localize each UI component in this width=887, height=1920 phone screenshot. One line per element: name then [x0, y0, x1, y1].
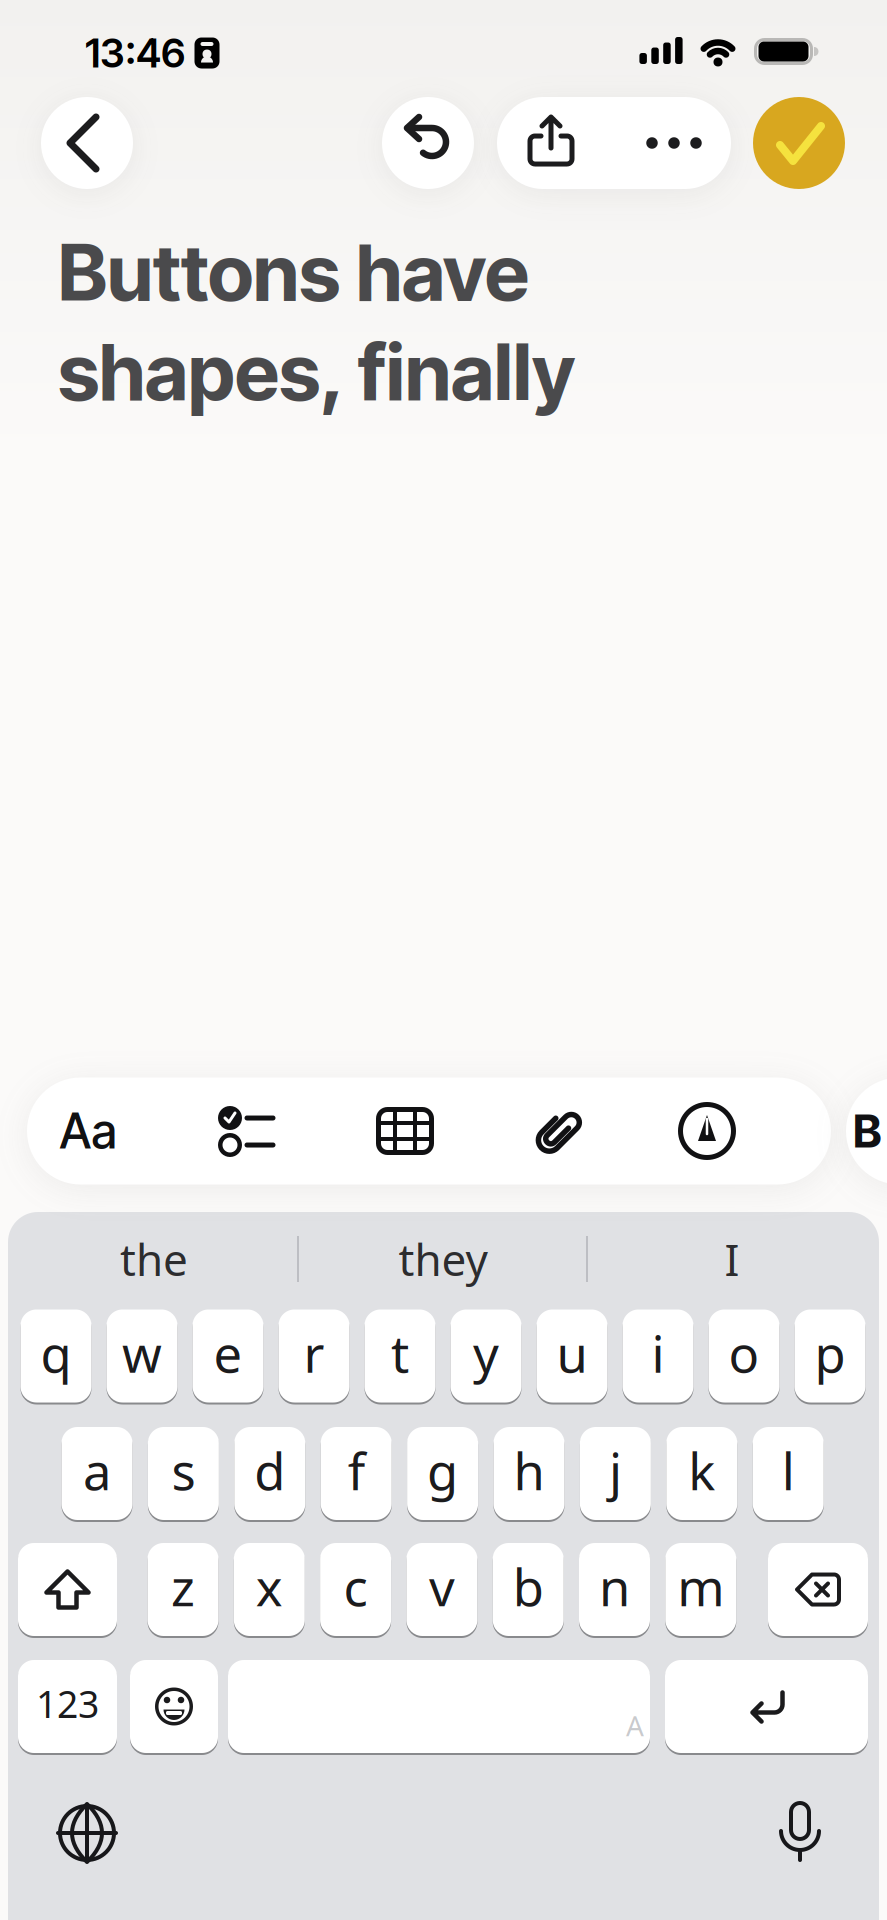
button[interactable]: k — [666, 1425, 737, 1521]
button[interactable]: p — [794, 1308, 865, 1404]
staticText: k — [688, 1437, 715, 1504]
staticText: p — [814, 1319, 845, 1387]
button[interactable] — [647, 1077, 767, 1184]
staticText: a — [83, 1437, 111, 1504]
button[interactable]: a — [61, 1425, 132, 1521]
staticText: the — [120, 1230, 188, 1288]
button[interactable]: the — [14, 1229, 294, 1289]
button[interactable]: they — [303, 1229, 583, 1289]
button[interactable]: m — [665, 1541, 736, 1637]
staticText: o — [728, 1319, 759, 1387]
button[interactable] — [32, 1778, 142, 1888]
staticText: v — [429, 1553, 455, 1620]
button[interactable]: q — [20, 1308, 91, 1404]
button[interactable]: Aa — [28, 1077, 148, 1184]
button[interactable] — [130, 1658, 218, 1754]
staticText: m — [677, 1553, 724, 1620]
staticText: shapes, finally — [58, 324, 575, 419]
button[interactable]: w — [106, 1308, 177, 1404]
button[interactable] — [382, 97, 474, 189]
button[interactable] — [768, 1541, 868, 1637]
staticText: g — [427, 1437, 458, 1504]
button[interactable]: f — [321, 1425, 392, 1521]
button[interactable] — [41, 97, 133, 189]
staticText: f — [348, 1437, 365, 1504]
button[interactable]: e — [192, 1308, 263, 1404]
staticText: s — [171, 1437, 195, 1504]
button[interactable]: h — [493, 1425, 564, 1521]
button[interactable]: n — [579, 1541, 650, 1637]
staticText: r — [303, 1319, 324, 1387]
staticText: z — [171, 1553, 195, 1620]
button[interactable] — [18, 1541, 117, 1637]
button[interactable] — [753, 97, 845, 189]
button[interactable]: x — [234, 1541, 305, 1637]
staticText: u — [556, 1319, 587, 1387]
button[interactable]: s — [148, 1425, 219, 1521]
button[interactable] — [345, 1077, 465, 1184]
staticText: I — [724, 1230, 739, 1288]
button[interactable] — [628, 97, 720, 189]
button[interactable]: Buttons have — [58, 225, 575, 419]
button[interactable]: r — [278, 1308, 349, 1404]
staticText: x — [256, 1553, 283, 1620]
staticText: t — [391, 1319, 409, 1387]
button[interactable]: y — [450, 1308, 521, 1404]
staticText: Aa — [59, 1102, 116, 1160]
button[interactable]: 123 — [18, 1658, 117, 1754]
staticText: d — [254, 1437, 285, 1504]
button[interactable] — [186, 1077, 306, 1184]
button[interactable]: t — [364, 1308, 435, 1404]
button[interactable]: c — [320, 1541, 391, 1637]
staticText: i — [651, 1319, 664, 1387]
staticText: A — [626, 1707, 644, 1744]
staticText: Buttons have — [58, 225, 529, 319]
button[interactable] — [505, 97, 597, 189]
staticText: 123 — [36, 1679, 99, 1728]
button[interactable]: g — [407, 1425, 478, 1521]
staticText: b — [513, 1553, 544, 1620]
button[interactable]: z — [147, 1541, 218, 1637]
staticText: c — [344, 1553, 368, 1620]
staticText: j — [609, 1437, 622, 1504]
button[interactable]: l — [753, 1425, 824, 1521]
button[interactable] — [665, 1658, 868, 1754]
button[interactable]: v — [406, 1541, 477, 1637]
staticText: e — [213, 1319, 242, 1387]
staticText: n — [599, 1553, 630, 1620]
staticText: h — [513, 1437, 544, 1504]
staticText: B — [853, 1104, 881, 1158]
button[interactable]: i — [622, 1308, 693, 1404]
button[interactable]: b — [493, 1541, 564, 1637]
staticText: y — [473, 1319, 499, 1387]
button[interactable] — [745, 1778, 855, 1888]
staticText: 13:46 — [85, 29, 185, 77]
button[interactable]: B — [837, 1077, 887, 1184]
button[interactable]: u — [536, 1308, 607, 1404]
staticText: q — [40, 1319, 71, 1387]
staticText: l — [782, 1437, 795, 1504]
staticText: they — [398, 1230, 487, 1288]
button[interactable]: j — [580, 1425, 651, 1521]
button[interactable]: d — [234, 1425, 305, 1521]
staticText: w — [122, 1319, 162, 1387]
button[interactable] — [500, 1077, 620, 1184]
button[interactable]: I — [592, 1229, 872, 1289]
button[interactable]: o — [708, 1308, 779, 1404]
button[interactable]: A — [228, 1658, 650, 1754]
